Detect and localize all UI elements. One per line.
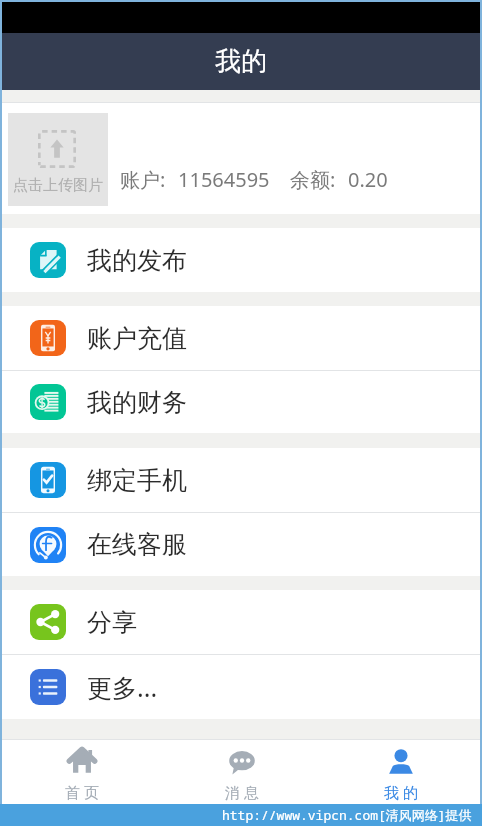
button[interactable]: 账户充值 [2,306,480,370]
button[interactable]: 我的财务 [2,371,480,433]
staticText: 我的发布 [87,245,187,276]
button[interactable]: 我的发布 [2,228,480,292]
staticText: 0.20 [348,166,388,193]
staticText: 11564595 [178,166,270,193]
staticText: 我的 [215,45,267,78]
staticText: 余额: [290,166,336,193]
button[interactable]: 上传图片 [8,113,108,206]
staticText: 绑定手机 [87,465,187,496]
button[interactable]: 在线客服 [2,513,480,576]
staticText: 更多... [87,670,158,704]
staticText: 首 页 [65,782,99,802]
button[interactable]: 分享 [2,590,480,654]
staticText: 点击上传图片 [13,176,103,195]
staticText: 账户充值 [87,323,187,354]
button[interactable]: 首 页 [2,740,162,804]
button[interactable]: 消 息 [162,740,321,804]
button[interactable]: 我 的 [321,740,480,804]
button[interactable]: 绑定手机 [2,448,480,512]
staticText: 我 的 [384,782,418,802]
staticText: http://www.vipcn.com[清风网络]提供 [222,806,472,824]
staticText: 在线客服 [87,529,187,560]
button[interactable]: 更多... [2,655,480,719]
staticText: 账户: [120,166,166,193]
staticText: 我的财务 [87,387,187,418]
staticText: 消 息 [225,782,259,802]
staticText: 分享 [87,607,137,638]
